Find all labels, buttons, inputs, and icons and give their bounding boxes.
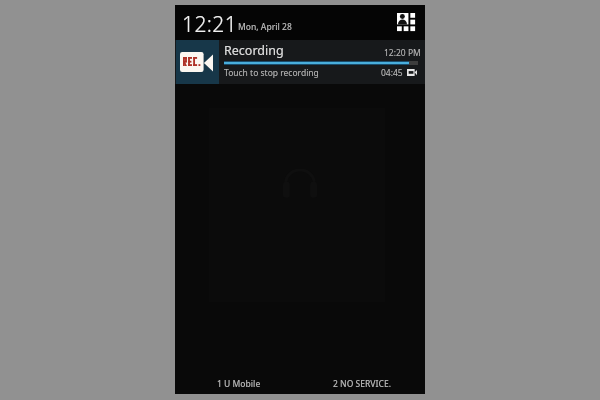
staticText: 04:45 <box>381 67 403 79</box>
staticText: Recording <box>224 42 284 59</box>
staticText: 1 U Mobile <box>217 378 261 390</box>
other: Video recording <box>407 69 417 76</box>
staticText: 12:21 <box>182 10 238 39</box>
button[interactable]: Quick settings <box>397 13 417 33</box>
staticText: 12:20 PM <box>384 47 421 59</box>
staticText: 2 NO SERVICE. <box>333 378 392 390</box>
staticText: Mon, April 28 <box>238 21 292 33</box>
staticText: Touch to stop recording <box>224 67 319 79</box>
button[interactable]: Recording <box>175 40 425 84</box>
